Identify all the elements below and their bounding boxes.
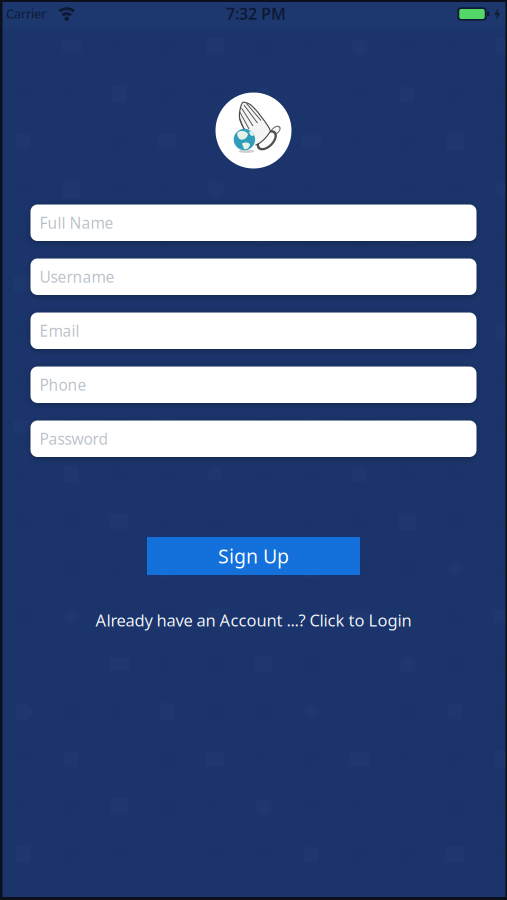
staticText: 7:32 PM: [226, 3, 286, 24]
button[interactable]: Already have an Account ...? Click to Lo…: [95, 609, 411, 631]
staticText: Username: [39, 266, 114, 287]
button[interactable]: Password: [30, 420, 476, 457]
staticText: Full Name: [39, 212, 113, 233]
button[interactable]: Phone: [30, 366, 476, 403]
button[interactable]: Full Name: [30, 204, 476, 241]
staticText: Sign Up: [218, 543, 289, 569]
staticText: Email: [39, 320, 79, 341]
button[interactable]: Sign Up: [147, 537, 360, 575]
staticText: Carrier: [6, 5, 46, 22]
button[interactable]: Username: [30, 258, 476, 295]
staticText: Password: [39, 428, 108, 449]
staticText: Phone: [39, 374, 86, 395]
button[interactable]: Email: [30, 312, 476, 349]
staticText: Already have an Account ...? Click to Lo…: [95, 609, 411, 631]
